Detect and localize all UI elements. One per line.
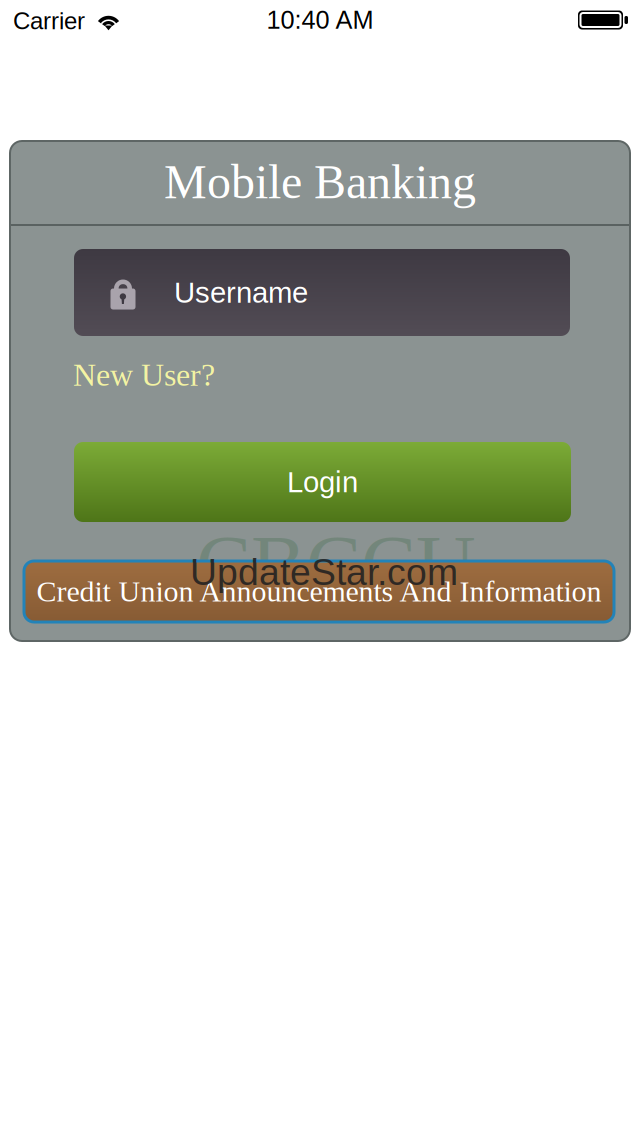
staticText: Credit Union Announcements And Informati… — [36, 575, 601, 608]
button[interactable]: New User? — [73, 355, 233, 395]
button[interactable]: Username — [74, 249, 570, 336]
staticText: CBCCU — [196, 518, 476, 610]
staticText: Mobile Banking — [164, 155, 476, 209]
staticText: New User? — [73, 357, 215, 393]
staticText: Carrier — [13, 8, 85, 34]
staticText: Login — [287, 466, 358, 498]
staticText: 10:40 AM — [266, 6, 373, 34]
staticText: UpdateStar.com — [190, 551, 458, 593]
button[interactable]: Login — [74, 442, 571, 522]
button[interactable]: Credit Union Announcements And Informati… — [24, 561, 614, 622]
staticText: Username — [174, 276, 308, 309]
